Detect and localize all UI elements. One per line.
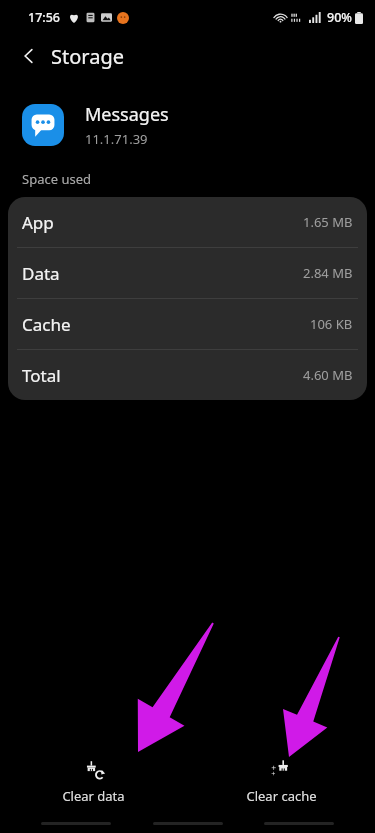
staticText: Cache — [22, 313, 71, 336]
button[interactable]: Total — [8, 350, 367, 400]
staticText: 17:56 — [28, 9, 61, 26]
button[interactable]: App — [8, 197, 367, 247]
button[interactable]: Back — [12, 39, 46, 73]
staticText: 106 KB — [310, 315, 353, 333]
staticText: 11.1.71.39 — [85, 130, 148, 148]
staticText: Space used — [22, 170, 91, 188]
staticText: 2.84 MB — [303, 264, 353, 282]
button[interactable]: Clear cache — [187, 751, 375, 805]
staticText: Total — [22, 364, 61, 387]
button[interactable]: Clear data — [0, 751, 187, 805]
staticText: Data — [22, 262, 60, 285]
button[interactable]: Cache — [8, 299, 367, 349]
staticText: 90% — [327, 9, 352, 26]
staticText: Clear data — [62, 787, 125, 805]
staticText: 4.60 MB — [303, 366, 353, 384]
staticText: Storage — [51, 43, 124, 70]
staticText: Messages — [85, 102, 169, 127]
staticText: App — [22, 211, 54, 234]
staticText: 1.65 MB — [303, 213, 353, 231]
staticText: Clear cache — [246, 787, 317, 805]
button[interactable]: Data — [8, 248, 367, 298]
